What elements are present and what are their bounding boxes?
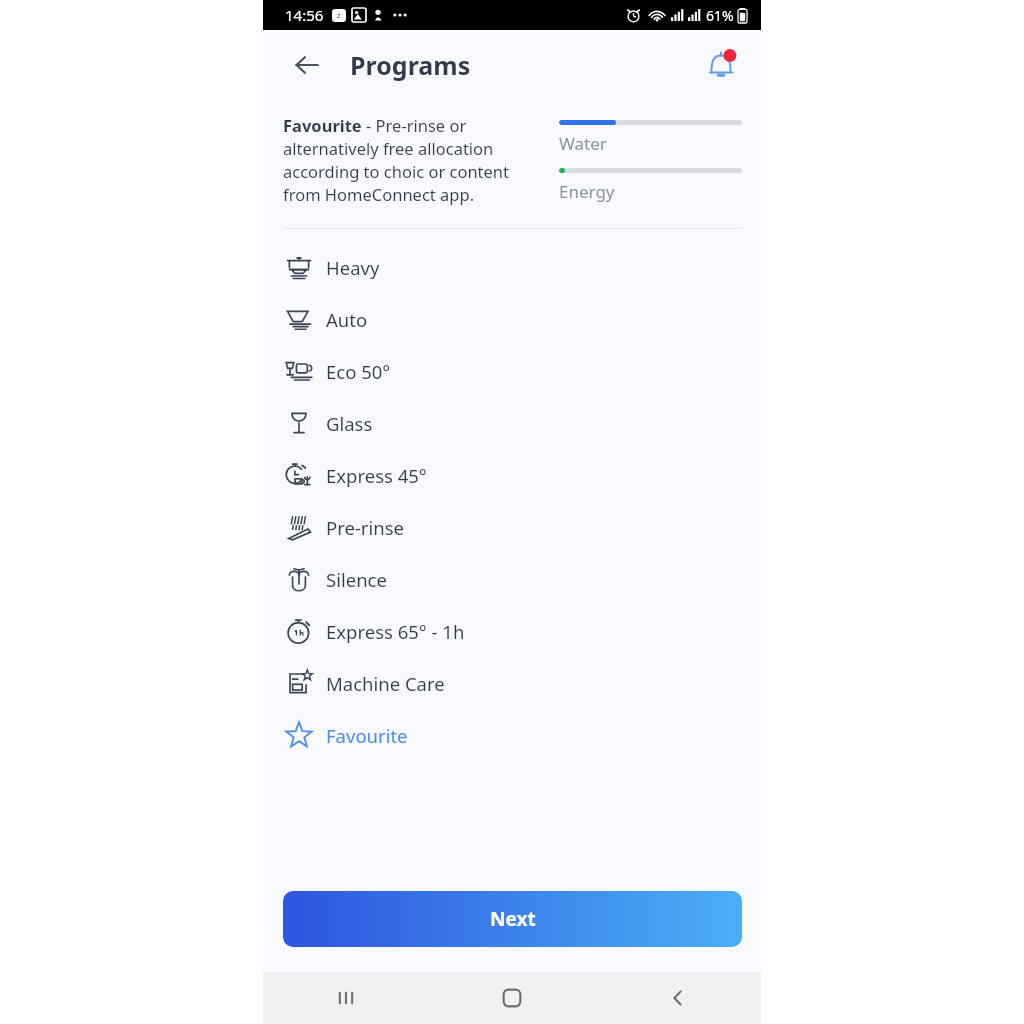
button[interactable]: Machine Care bbox=[263, 657, 761, 709]
staticText: Express 45° bbox=[326, 463, 427, 488]
staticText: Favourite - Pre-rinse or alternatively f… bbox=[283, 114, 545, 206]
button[interactable]: Express 65° - 1h bbox=[263, 605, 761, 657]
button[interactable]: Heavy bbox=[263, 241, 761, 293]
button[interactable]: Pre-rinse bbox=[263, 501, 761, 553]
staticText: 14:56 bbox=[285, 5, 324, 25]
button[interactable]: Back bbox=[595, 972, 761, 1024]
staticText: Pre-rinse bbox=[326, 515, 404, 540]
button[interactable]: Express 45° bbox=[263, 449, 761, 501]
button[interactable]: Favourite bbox=[263, 709, 761, 761]
staticText: Glass bbox=[326, 411, 373, 436]
staticText: Eco 50° bbox=[326, 359, 391, 384]
button[interactable]: Glass bbox=[263, 397, 761, 449]
staticText: Auto bbox=[326, 307, 368, 332]
button[interactable]: Next bbox=[283, 891, 742, 947]
staticText: Energy bbox=[559, 180, 615, 203]
staticText: Programs bbox=[350, 48, 471, 82]
button[interactable]: Auto bbox=[263, 293, 761, 345]
staticText: Machine Care bbox=[326, 671, 445, 696]
button[interactable]: Eco 50° bbox=[263, 345, 761, 397]
button[interactable]: Back bbox=[285, 43, 329, 87]
staticText: Next bbox=[490, 906, 536, 932]
button[interactable]: Silence bbox=[263, 553, 761, 605]
button[interactable]: Home bbox=[429, 972, 595, 1024]
staticText: Silence bbox=[326, 567, 387, 592]
button[interactable]: Notifications bbox=[697, 41, 745, 89]
staticText: Favourite bbox=[326, 723, 408, 748]
staticText: Water bbox=[559, 132, 607, 155]
staticText: Express 65° - 1h bbox=[326, 619, 465, 644]
staticText: 61% bbox=[706, 6, 734, 25]
staticText: z bbox=[337, 11, 341, 21]
button[interactable]: Recent apps bbox=[263, 972, 429, 1024]
staticText: Heavy bbox=[326, 255, 380, 280]
